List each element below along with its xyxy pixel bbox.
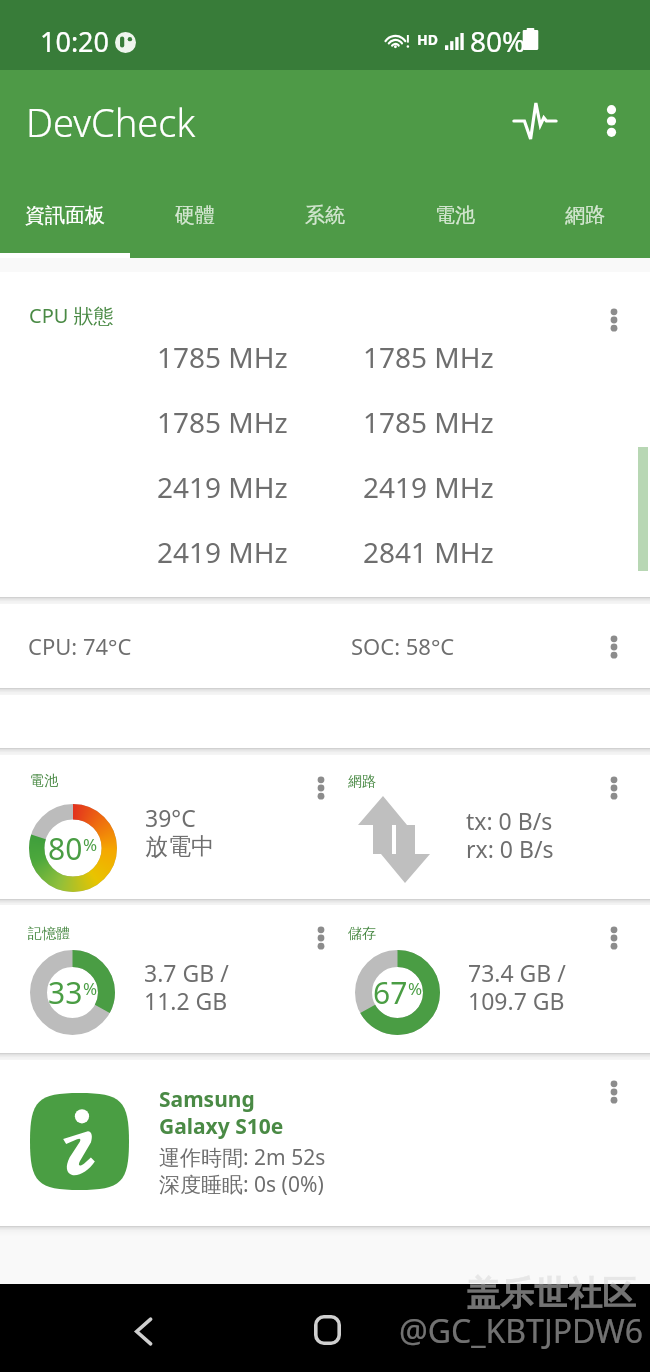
button[interactable]: 電池 [0,755,325,899]
staticText: 73.4 GB / 109.7 GB [468,957,566,1017]
button[interactable]: Options [299,916,343,960]
staticText: 記憶體 [28,925,70,943]
staticText: CPU 狀態 [29,302,114,329]
staticText: 1785 MHz [363,338,494,376]
button[interactable]: Options [592,766,636,810]
staticText: 2419 MHz [363,468,494,506]
staticText: 39°C 放電中 [145,802,214,861]
button[interactable]: Options [299,766,343,810]
staticText: % [408,977,423,1000]
staticText: SOC: 58°C [351,631,455,661]
staticText: 儲存 [348,925,376,943]
staticText: 2841 MHz [363,533,494,571]
staticText: 電池 [435,203,475,228]
button[interactable]: 網路 [520,192,650,258]
button[interactable]: Options [592,1070,636,1114]
button[interactable]: Monitor [504,90,566,152]
staticText: 1785 MHz [363,403,494,441]
staticText: 10:20 [40,23,110,60]
staticText: tx: 0 B/s rx: 0 B/s [466,805,554,865]
button[interactable]: Samsung Galaxy S10e [0,1060,650,1226]
staticText: 硬體 [175,203,215,228]
button[interactable]: More options [580,90,642,152]
staticText: 80 [48,828,83,869]
staticText: 3.7 GB / 11.2 GB [144,957,229,1017]
button[interactable]: Home [297,1300,357,1360]
staticText: 運作時間: 2m 52s 深度睡眠: 0s (0%) [159,1143,326,1199]
button[interactable]: Options [592,298,636,342]
staticText: 2419 MHz [157,533,288,571]
button[interactable]: 系統 [260,192,390,258]
staticText: 網路 [565,203,605,228]
button[interactable]: 硬體 [130,192,260,258]
staticText: 80% [470,22,526,60]
button[interactable]: Options [592,625,636,669]
staticText: 2419 MHz [157,468,288,506]
button[interactable]: CPU 狀態 [0,272,650,597]
staticText: % [83,833,98,856]
staticText: 系統 [305,203,345,228]
button[interactable]: 資訊面板 [0,192,130,258]
staticText: DevCheck [26,96,196,148]
button[interactable]: Options [592,916,636,960]
staticText: 1785 MHz [157,338,288,376]
staticText: 電池 [30,772,58,790]
staticText: 67 [373,972,408,1013]
button[interactable]: 記憶體 [0,905,325,1053]
staticText: 網路 [348,773,376,791]
button[interactable]: 網路 [325,755,650,899]
staticText: @GC_KBTJPDW6 [399,1309,644,1353]
staticText: CPU: 74°C [28,631,132,661]
staticText: 資訊面板 [25,203,105,228]
staticText: HD [417,30,438,49]
staticText: 33 [48,972,83,1013]
button[interactable]: CPU: 74°C [0,604,650,688]
button[interactable]: Back [113,1301,173,1361]
button[interactable]: 電池 [390,192,520,258]
staticText: Samsung Galaxy S10e [159,1085,284,1140]
button[interactable]: 儲存 [325,905,650,1053]
staticText: % [83,977,98,1000]
staticText: 1785 MHz [157,403,288,441]
staticText: 盖乐世社区 [466,1272,636,1315]
